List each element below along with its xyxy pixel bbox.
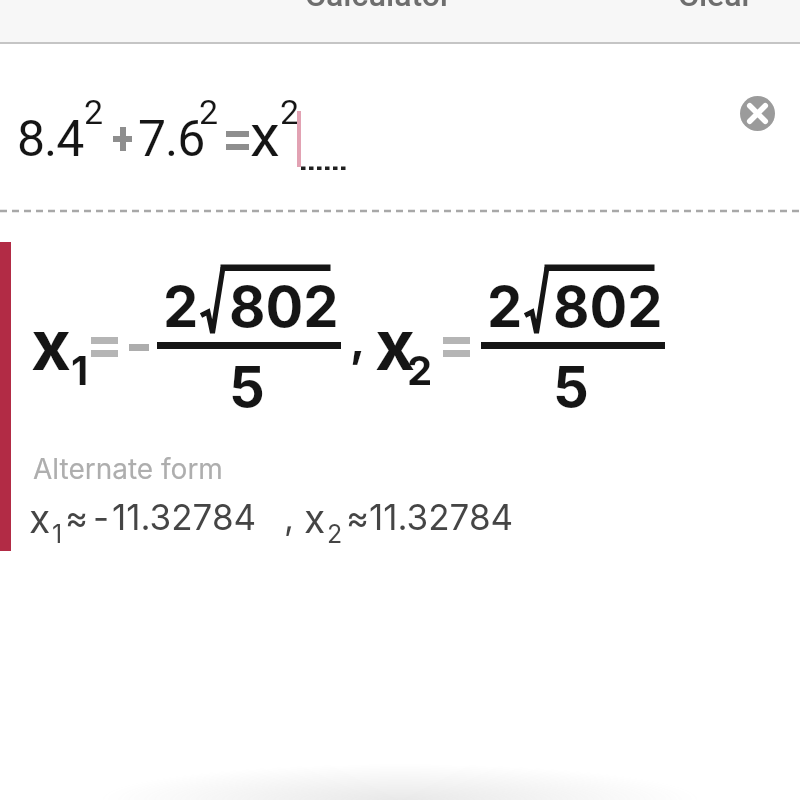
staticText: 5 <box>229 353 265 421</box>
staticText: 2 <box>280 92 300 132</box>
staticText: - <box>93 496 110 538</box>
button[interactable] <box>740 96 775 131</box>
staticText: 11.32784 <box>369 496 514 538</box>
staticText: 11.32784 <box>112 496 257 538</box>
staticText: x <box>29 495 51 542</box>
button[interactable]: Calculator <box>0 0 800 42</box>
staticText: , <box>350 311 366 367</box>
staticText: 2 <box>84 92 104 132</box>
staticText: , <box>284 496 295 538</box>
staticText: 2 <box>407 346 433 394</box>
button[interactable]: 8.4 <box>0 0 67 59</box>
staticText: x <box>250 100 280 170</box>
staticText: 2 <box>199 92 219 132</box>
staticText: ≈ <box>346 496 370 538</box>
staticText: x <box>375 303 416 386</box>
staticText: 2 <box>327 519 343 549</box>
staticText: ≈ <box>65 496 89 538</box>
staticText: 802 <box>553 273 663 341</box>
staticText: 1 <box>71 346 89 394</box>
staticText: 7.6 <box>138 110 205 169</box>
staticText: 5 <box>553 353 589 421</box>
staticText: 1 <box>52 519 63 549</box>
staticText: 2 <box>487 273 523 341</box>
staticText: Calculator <box>305 0 452 14</box>
staticText: Clear <box>678 0 753 14</box>
staticText: 2 <box>163 273 199 341</box>
button[interactable]: x <box>0 0 41 83</box>
staticText: 802 <box>229 273 339 341</box>
staticText: x <box>304 495 326 542</box>
